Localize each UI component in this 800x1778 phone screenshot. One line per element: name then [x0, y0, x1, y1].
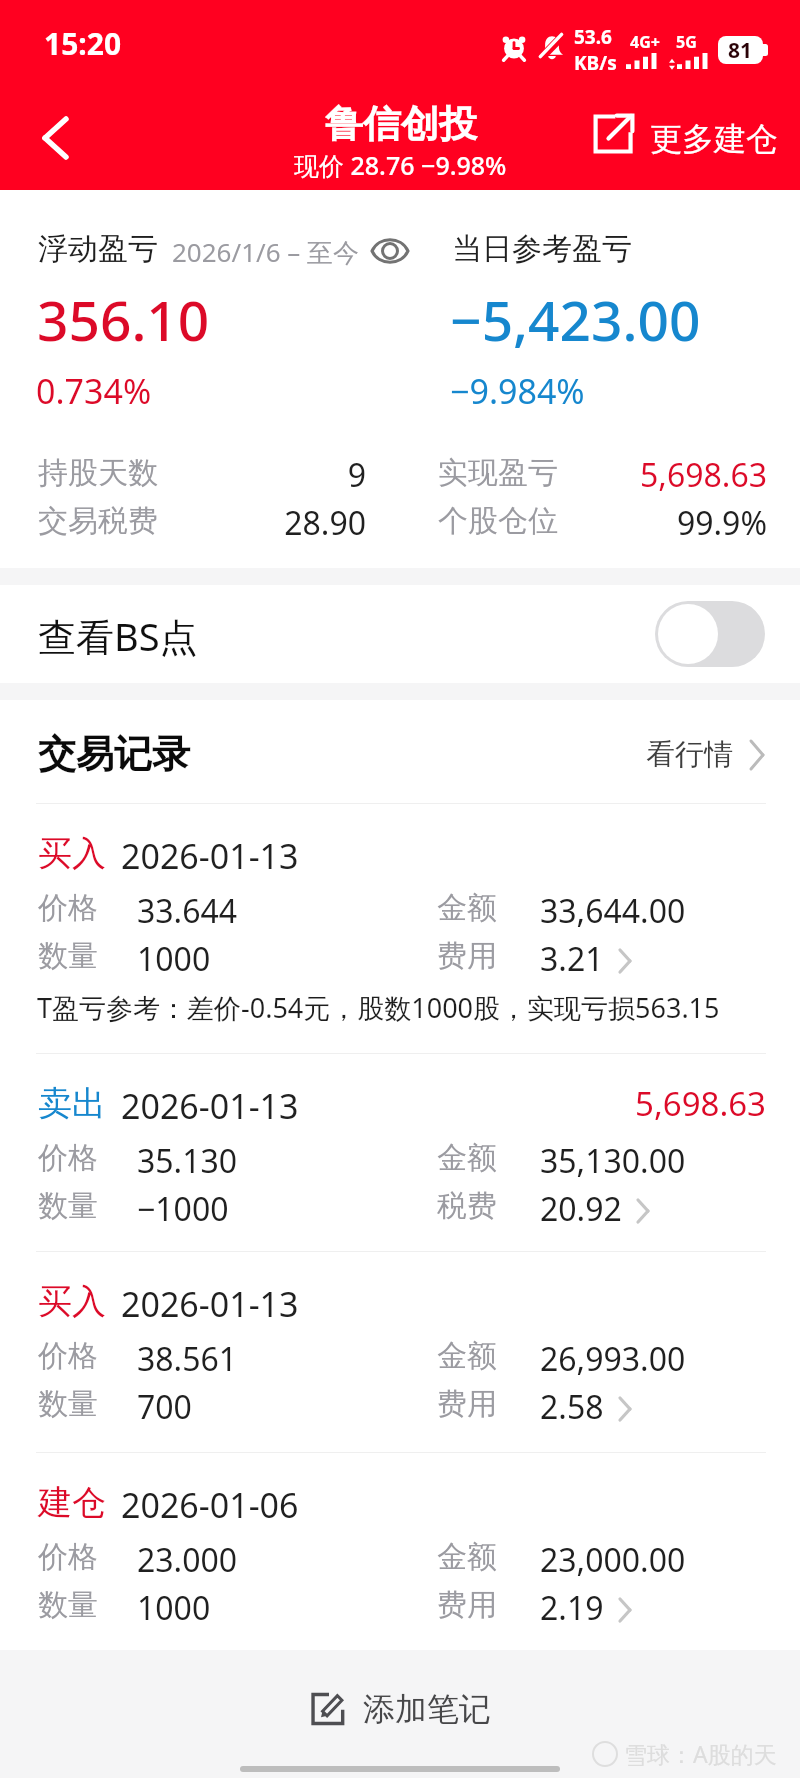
staticText: 建仓 — [38, 1481, 106, 1524]
staticText: 81 — [728, 36, 753, 64]
staticText: 53.6 — [574, 24, 612, 50]
staticText: 买入 — [38, 832, 106, 875]
staticText: 2026/1/6 – 至今 — [172, 234, 360, 270]
button[interactable]: 买入 — [0, 803, 800, 1053]
staticText: 15:20 — [44, 23, 122, 64]
staticText: 税费 — [437, 1187, 497, 1225]
staticText: −9.984% — [450, 368, 585, 414]
staticText: 金额 — [437, 1139, 497, 1177]
staticText: KB/s — [574, 50, 617, 76]
staticText: −1000 — [137, 1187, 229, 1231]
staticText: 费用 — [437, 937, 497, 975]
button[interactable]: 看行情 — [646, 736, 771, 773]
staticText: 2026-01-13 — [121, 1281, 299, 1327]
staticText: 33.644 — [137, 889, 238, 933]
staticText: 2026-01-13 — [121, 833, 299, 879]
button[interactable]: 卖出 — [0, 1053, 800, 1251]
staticText: 添加笔记 — [363, 1689, 491, 1729]
staticText: 38.561 — [137, 1337, 238, 1381]
staticText: 数量 — [38, 1586, 98, 1624]
staticText: 更多建仓 — [650, 119, 778, 159]
staticText: 交易税费 — [38, 502, 158, 540]
staticText: T盈亏参考：差价-0.54元，股数1000股，实现亏损563.15 — [37, 989, 720, 1026]
staticText: 2026-01-06 — [121, 1482, 299, 1528]
staticText: 33,644.00 — [540, 889, 686, 933]
staticText: 23.000 — [137, 1538, 238, 1582]
staticText: 0.734% — [36, 368, 152, 414]
staticText: 3.21 — [540, 937, 604, 981]
staticText: 5,698.63 — [562, 453, 767, 497]
staticText: 价格 — [38, 889, 98, 927]
staticText: 鲁信创投 — [325, 100, 477, 148]
button[interactable]: 更多建仓 — [591, 111, 778, 157]
staticText: 1000 — [137, 937, 211, 981]
staticText: 个股仓位 — [438, 502, 558, 540]
staticText: 数量 — [38, 1187, 98, 1225]
staticText: 356.10 — [37, 282, 210, 357]
staticText: 费用 — [437, 1586, 497, 1624]
staticText: 金额 — [437, 889, 497, 927]
staticText: 数量 — [38, 1385, 98, 1423]
staticText: 买入 — [38, 1280, 106, 1323]
staticText: 5,698.63 — [500, 1081, 766, 1126]
button[interactable]: 查看BS点 — [0, 585, 800, 683]
staticText: 交易记录 — [38, 730, 190, 778]
staticText: 9 — [326, 453, 366, 497]
staticText: 浮动盈亏 — [38, 230, 158, 268]
staticText: 4G+ — [630, 31, 660, 53]
staticText: 持股天数 — [38, 454, 158, 492]
staticText: 35,130.00 — [540, 1139, 686, 1183]
staticText: 现价 28.76 −9.98% — [294, 148, 507, 182]
staticText: 28.90 — [226, 501, 366, 545]
staticText: 5G — [676, 31, 697, 53]
staticText: 99.9% — [562, 501, 767, 545]
button[interactable]: 买入 — [0, 1251, 800, 1449]
staticText: 2.58 — [540, 1385, 604, 1429]
staticText: 700 — [137, 1385, 192, 1429]
staticText: 查看BS点 — [38, 610, 198, 662]
staticText: 价格 — [38, 1139, 98, 1177]
staticText: 实现盈亏 — [438, 454, 558, 492]
staticText: 费用 — [437, 1385, 497, 1423]
staticText: 数量 — [38, 937, 98, 975]
staticText: 金额 — [437, 1337, 497, 1375]
staticText: 2.19 — [540, 1586, 604, 1630]
staticText: 35.130 — [137, 1139, 238, 1183]
staticText: 价格 — [38, 1538, 98, 1576]
staticText: 雪球：A股的天 — [624, 1738, 777, 1769]
staticText: 当日参考盈亏 — [452, 230, 632, 268]
staticText: 看行情 — [646, 736, 733, 773]
button[interactable]: Toggle visibility — [369, 229, 411, 271]
staticText: 卖出 — [38, 1082, 106, 1125]
staticText: 20.92 — [540, 1187, 622, 1231]
staticText: 1000 — [137, 1586, 211, 1630]
staticText: 价格 — [38, 1337, 98, 1375]
staticText: 金额 — [437, 1538, 497, 1576]
staticText: −5,423.00 — [450, 282, 701, 357]
button[interactable]: Back — [20, 103, 90, 173]
button[interactable]: 建仓 — [0, 1452, 800, 1650]
staticText: 2026-01-13 — [121, 1083, 299, 1129]
staticText: 26,993.00 — [540, 1337, 686, 1381]
button[interactable]: 添加笔记 — [0, 1685, 800, 1733]
staticText: 23,000.00 — [540, 1538, 686, 1582]
